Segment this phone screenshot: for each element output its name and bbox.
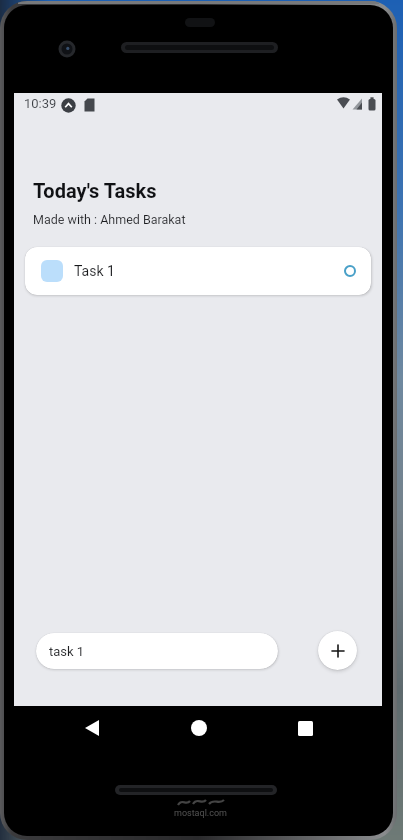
staticText: task 1	[49, 644, 85, 659]
staticText: Made with : Ahmed Barakat	[33, 212, 186, 227]
staticText: Task 1	[74, 263, 115, 279]
staticText: mostaql.com	[174, 808, 227, 819]
button[interactable]: task 1	[36, 633, 278, 669]
button[interactable]	[185, 714, 213, 742]
staticText: Today's Tasks	[33, 179, 157, 202]
staticText: 10:39	[24, 96, 57, 111]
button[interactable]	[291, 714, 319, 742]
button[interactable]	[318, 631, 357, 670]
button[interactable]	[78, 714, 106, 742]
button[interactable]: Task 1	[25, 247, 371, 295]
